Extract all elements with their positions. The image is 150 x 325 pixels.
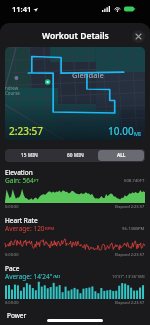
staticText: Gain: 564 xyxy=(5,176,34,185)
staticText: ALL xyxy=(117,152,126,159)
staticText: FT xyxy=(34,178,39,184)
staticText: 11:41 xyxy=(12,4,32,14)
staticText: 2:23:57 xyxy=(9,124,44,138)
staticText: 10'37"-13'36"/MI xyxy=(112,274,145,280)
staticText: Elapsed 2:23:57 xyxy=(115,204,145,209)
staticText: MI xyxy=(134,130,141,137)
staticText: Average: 14'24" xyxy=(5,272,53,281)
staticText: 0:00:00 xyxy=(5,252,19,257)
staticText: BPM xyxy=(45,226,55,232)
button[interactable]: Glendale xyxy=(5,47,145,140)
staticText: Heart Rate xyxy=(5,216,38,225)
staticText: 0:00:00 xyxy=(5,204,19,209)
button[interactable]: Close xyxy=(132,30,145,43)
staticText: Workout Details xyxy=(42,30,109,42)
staticText: ndrew Course xyxy=(5,85,20,96)
staticText: Elapsed 2:23:57 xyxy=(115,252,145,257)
staticText: 608-740FT xyxy=(124,178,145,184)
button[interactable]: 15 MIN xyxy=(6,150,52,161)
staticText: 60 MIN xyxy=(67,152,84,159)
staticText: Glendale xyxy=(72,70,104,80)
staticText: Elapsed 2:23:57 xyxy=(115,300,145,305)
staticText: Average: 120 xyxy=(5,224,45,233)
staticText: 15 MIN xyxy=(21,152,38,159)
staticText: Elevation xyxy=(5,168,33,177)
staticText: /MI xyxy=(53,274,60,280)
button[interactable]: ALL xyxy=(98,150,144,161)
button[interactable]: 60 MIN xyxy=(52,150,98,161)
staticText: Pace xyxy=(5,264,20,273)
staticText: Power xyxy=(7,311,27,320)
staticText: 10.00 xyxy=(108,124,134,138)
staticText: 96-136BPM xyxy=(122,226,145,232)
staticText: 0:00:00 xyxy=(5,300,19,305)
